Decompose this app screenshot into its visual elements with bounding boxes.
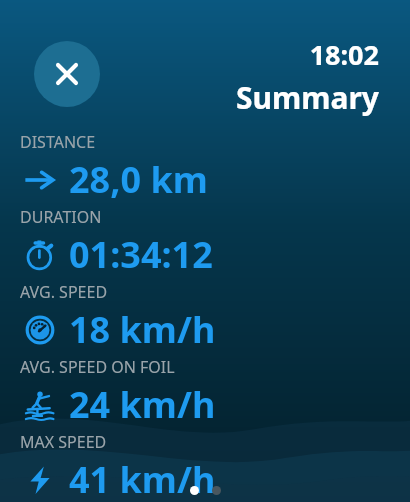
staticText: 41 km/h (69, 455, 216, 502)
button[interactable]: AVG. SPEED (20, 281, 410, 354)
staticText: DISTANCE (20, 131, 96, 153)
button[interactable]: DURATION (20, 206, 410, 279)
button[interactable]: DISTANCE (20, 131, 410, 204)
staticText: DURATION (20, 206, 102, 228)
staticText: 18:02 (309, 36, 379, 73)
staticText: 18 km/h (69, 305, 216, 354)
staticText: 01:34:12 (69, 230, 213, 279)
button[interactable]: MAX SPEED (20, 431, 410, 502)
staticText: MAX SPEED (20, 431, 107, 453)
staticText: 28,0 km (69, 155, 208, 204)
staticText: Summary (235, 77, 379, 118)
staticText: 24 km/h (69, 380, 216, 429)
button[interactable]: AVG. SPEED ON FOIL (20, 356, 410, 429)
button[interactable]: Close (34, 41, 100, 107)
staticText: AVG. SPEED ON FOIL (20, 356, 175, 378)
staticText: AVG. SPEED (20, 281, 108, 303)
